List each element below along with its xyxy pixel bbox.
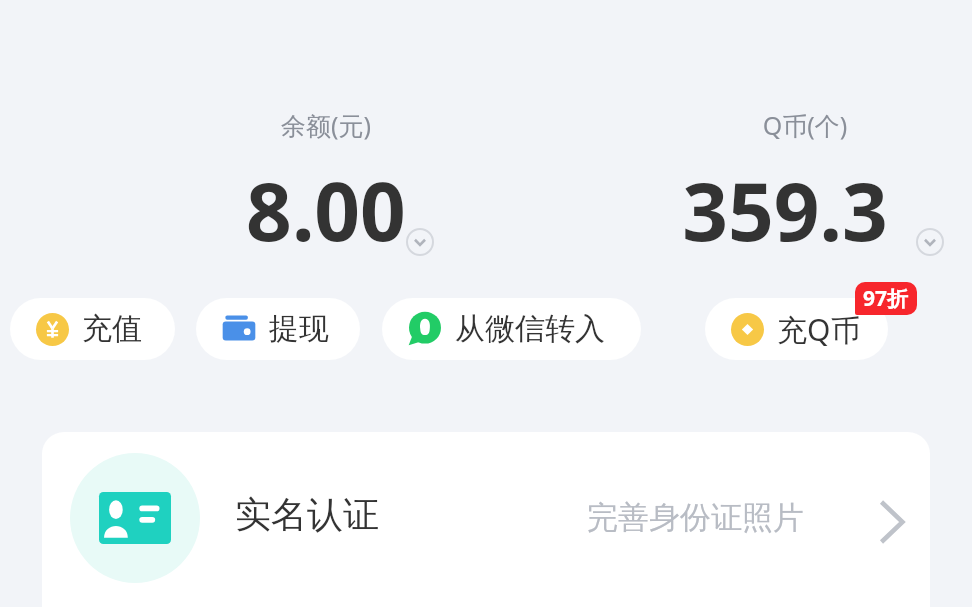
staticText: 充Q币: [777, 309, 861, 350]
staticText: 359.3: [640, 155, 930, 264]
staticText: Q币(个): [655, 108, 955, 142]
staticText: 8.00: [186, 155, 466, 264]
staticText: 余额(元): [186, 108, 466, 142]
button[interactable]: Show balance details: [406, 228, 434, 256]
button[interactable]: 充值: [10, 298, 175, 360]
button[interactable]: 提现: [196, 298, 360, 360]
staticText: 提现: [269, 310, 329, 348]
button[interactable]: 从微信转入: [382, 298, 641, 360]
staticText: 97折: [863, 284, 909, 313]
button[interactable]: 充Q币: [705, 298, 888, 360]
staticText: 完善身份证照片: [587, 498, 804, 537]
staticText: 充值: [82, 310, 142, 348]
staticText: 从微信转入: [455, 310, 605, 348]
button[interactable]: 实名认证: [42, 432, 930, 607]
staticText: 实名认证: [235, 492, 379, 537]
button[interactable]: Show Q coin details: [916, 228, 944, 256]
